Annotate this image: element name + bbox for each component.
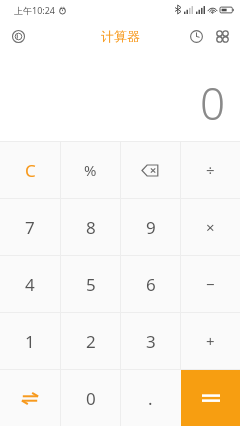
button[interactable]: ÷ — [181, 142, 240, 198]
button[interactable]: C — [0, 142, 60, 198]
button[interactable]: 7 — [0, 199, 60, 255]
staticText: + — [206, 331, 215, 351]
button[interactable]: 9 — [121, 199, 180, 255]
button[interactable]: More tools — [210, 24, 234, 48]
staticText: ÷ — [206, 160, 215, 180]
staticText: 6 — [146, 273, 156, 296]
button[interactable]: Unit converter — [0, 370, 60, 426]
button[interactable]: 1 — [0, 313, 60, 369]
staticText: 计算器 — [101, 28, 140, 44]
button[interactable] — [181, 370, 240, 426]
staticText: 7 — [25, 216, 35, 239]
button[interactable]: 4 — [0, 256, 60, 312]
staticText: 3 — [146, 330, 156, 353]
button[interactable]: History — [184, 24, 208, 48]
staticText: × — [206, 217, 215, 237]
button[interactable]: . — [121, 370, 180, 426]
staticText: 9 — [146, 216, 156, 239]
staticText: − — [206, 274, 215, 294]
button[interactable]: 8 — [61, 199, 120, 255]
staticText: 5 — [86, 273, 96, 296]
button[interactable]: Currency converter — [6, 24, 30, 48]
button[interactable]: × — [181, 199, 240, 255]
button[interactable]: 5 — [61, 256, 120, 312]
staticText: 1 — [25, 330, 35, 353]
button[interactable]: 0 — [61, 370, 120, 426]
button[interactable]: 3 — [121, 313, 180, 369]
staticText: 8 — [86, 216, 96, 239]
button[interactable]: Backspace — [121, 142, 180, 198]
button[interactable]: 2 — [61, 313, 120, 369]
button[interactable]: % — [61, 142, 120, 198]
button[interactable]: + — [181, 313, 240, 369]
button[interactable]: 6 — [121, 256, 180, 312]
staticText: % — [84, 160, 97, 180]
staticText: 0 — [86, 387, 96, 410]
staticText: 2 — [86, 330, 96, 353]
staticText: C — [25, 159, 36, 182]
staticText: . — [148, 387, 153, 410]
staticText: 0 — [200, 73, 226, 133]
button[interactable]: − — [181, 256, 240, 312]
staticText: 4 — [25, 273, 35, 296]
staticText: 上午10:24 — [14, 4, 56, 16]
